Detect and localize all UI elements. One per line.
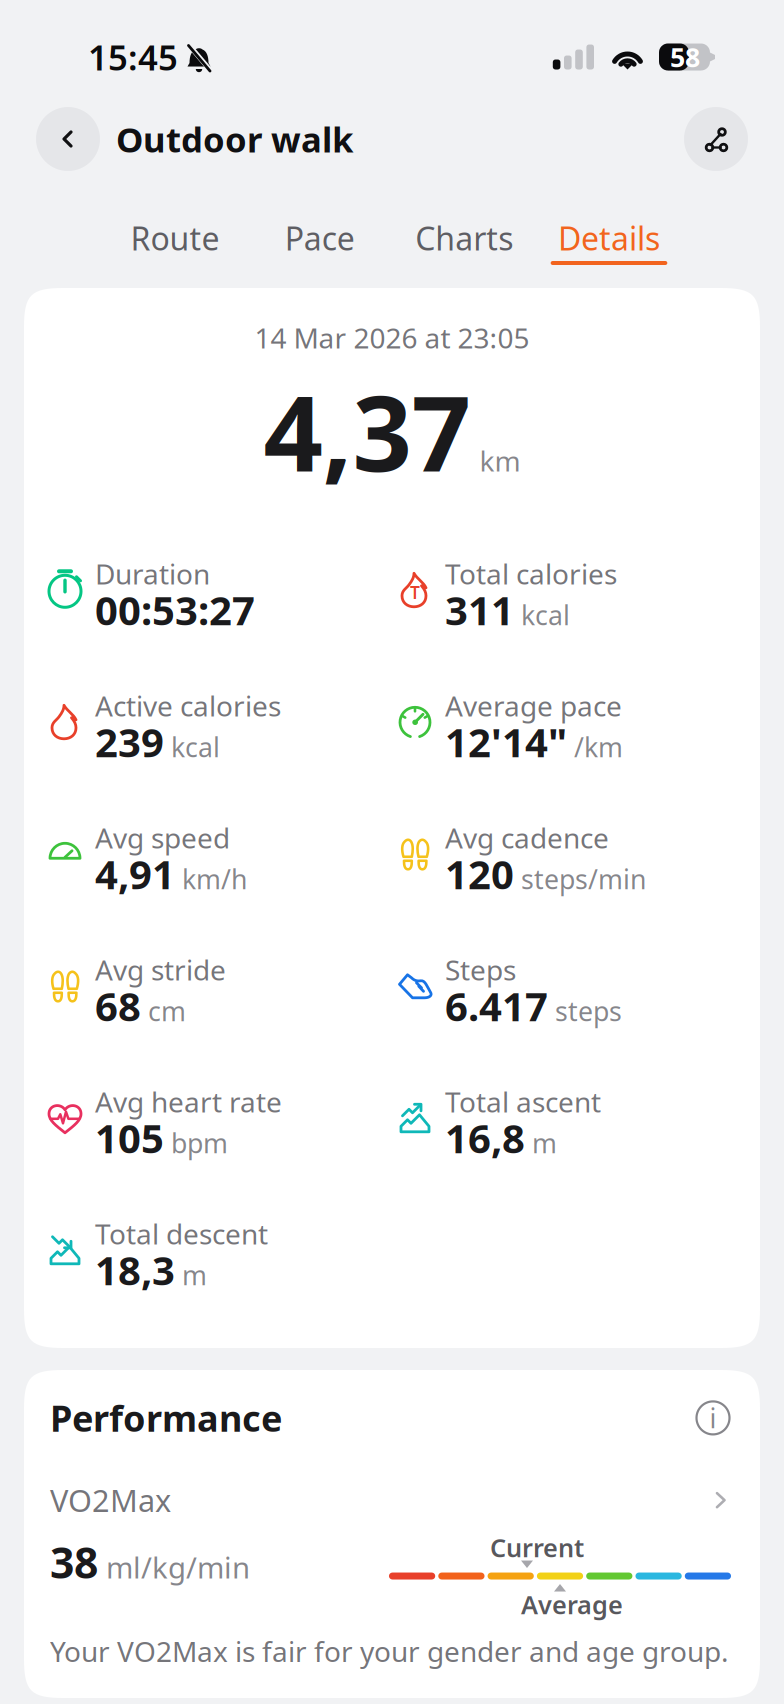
staticText: Total ascent xyxy=(445,1083,601,1120)
staticText: 38 xyxy=(50,1534,98,1590)
button[interactable]: Charts xyxy=(406,223,523,265)
staticText: VO2Max xyxy=(50,1480,171,1520)
staticText: 120 xyxy=(445,847,514,900)
staticText: Charts xyxy=(415,217,513,259)
staticText: 16,8 xyxy=(445,1111,525,1164)
staticText: 4,37 xyxy=(263,362,470,500)
staticText: steps xyxy=(555,993,622,1029)
staticText: Performance xyxy=(50,1394,282,1442)
staticText: 4,91 xyxy=(95,847,175,900)
staticText: 15:45 xyxy=(88,34,178,80)
staticText: 18,3 xyxy=(95,1243,175,1296)
staticText: Route xyxy=(130,217,219,259)
staticText: m xyxy=(532,1125,557,1161)
staticText: 58 xyxy=(670,39,700,75)
staticText: Current xyxy=(490,1531,584,1564)
staticText: Steps xyxy=(445,951,516,988)
button[interactable]: Share xyxy=(684,107,748,171)
staticText: kcal xyxy=(521,597,570,633)
staticText: Outdoor walk xyxy=(116,116,353,162)
staticText: bpm xyxy=(171,1125,228,1161)
staticText: cm xyxy=(148,993,186,1029)
staticText: 105 xyxy=(95,1111,164,1164)
staticText: Avg heart rate xyxy=(95,1083,282,1120)
staticText: Details xyxy=(558,217,660,259)
staticText: m xyxy=(182,1257,207,1293)
staticText: i xyxy=(709,1400,716,1436)
staticText: Total calories xyxy=(445,555,617,592)
button[interactable]: VO2Max xyxy=(50,1442,734,1520)
button[interactable]: Info xyxy=(692,1397,734,1439)
button[interactable]: Route xyxy=(117,223,233,265)
button[interactable]: Details xyxy=(551,223,667,265)
staticText: 00:53:27 xyxy=(95,583,255,636)
staticText: Avg speed xyxy=(95,819,230,856)
staticText: /km xyxy=(574,729,623,765)
button[interactable]: Back xyxy=(36,107,100,171)
staticText: km/h xyxy=(182,861,247,897)
staticText: ml/kg/min xyxy=(106,1548,250,1587)
staticText: 311 xyxy=(445,583,514,636)
staticText: 12'14" xyxy=(445,715,567,768)
staticText: Your VO2Max is fair for your gender and … xyxy=(50,1632,729,1670)
staticText: 14 Mar 2026 at 23:05 xyxy=(254,319,529,356)
staticText: Total descent xyxy=(95,1215,268,1252)
staticText: Active calories xyxy=(95,687,281,724)
staticText: Pace xyxy=(285,217,355,259)
staticText: Avg cadence xyxy=(445,819,609,856)
staticText: km xyxy=(479,442,520,479)
staticText: Average xyxy=(521,1588,623,1621)
button[interactable]: Pace xyxy=(261,223,378,265)
staticText: Avg stride xyxy=(95,951,226,988)
staticText: steps/min xyxy=(521,861,646,897)
staticText: Duration xyxy=(95,555,210,592)
staticText: T xyxy=(410,581,420,604)
staticText: 6.417 xyxy=(445,979,548,1032)
staticText: 68 xyxy=(95,979,141,1032)
staticText: 239 xyxy=(95,715,164,768)
staticText: Average pace xyxy=(445,687,622,724)
staticText: kcal xyxy=(171,729,220,765)
